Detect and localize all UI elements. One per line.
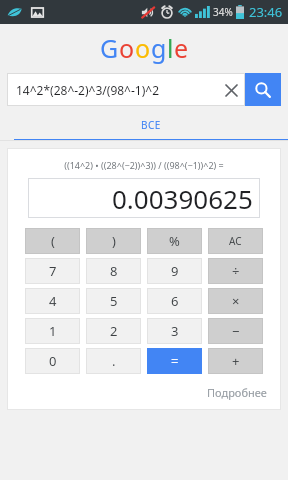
staticText: 3 [171,322,179,340]
staticText: 9 [171,262,179,280]
staticText: 0 [49,352,57,370]
staticText: Подробнее [207,385,267,400]
button[interactable]: ) [86,228,141,254]
staticText: 7 [49,262,57,280]
button[interactable]: 1 [25,318,80,344]
staticText: 2 [110,322,118,340]
button[interactable]: 8 [86,258,141,284]
button[interactable]: AC [208,228,263,254]
button[interactable]: Search [245,73,281,106]
staticText: l [167,31,174,65]
staticText: ( [51,232,55,250]
button[interactable]: + [208,348,263,374]
staticText: g [151,31,167,65]
staticText: ((14^2) • ((28^(−2))^3)) / ((98^(−1))^2)… [7,159,281,171]
button[interactable]: Clear [220,79,242,101]
button[interactable]: 6 [147,288,202,314]
staticText: − [232,322,240,340]
button[interactable]: − [208,318,263,344]
button[interactable]: ВСЕ [14,111,288,140]
button[interactable]: 9 [147,258,202,284]
staticText: G [100,31,119,65]
button[interactable]: 4 [25,288,80,314]
button[interactable]: ÷ [208,258,263,284]
staticText: 4 [49,292,57,310]
button[interactable]: 14^2*(28^-2)^3/(98^-1)^2 [7,73,245,106]
staticText: 8 [110,262,118,280]
staticText: 6 [171,292,179,310]
staticText: 34% [213,5,233,19]
button[interactable]: 3 [147,318,202,344]
staticText: . [112,352,116,370]
button[interactable]: = [147,348,202,374]
staticText: % [169,232,180,250]
staticText: 5 [110,292,118,310]
staticText: 23:46 [249,3,283,21]
button[interactable]: % [147,228,202,254]
staticText: ) [112,232,116,250]
staticText: o [119,31,135,65]
staticText: 14^2*(28^-2)^3/(98^-1)^2 [16,82,220,98]
staticText: e [174,31,189,65]
staticText: AC [229,234,242,248]
button[interactable]: 7 [25,258,80,284]
button[interactable]: 5 [86,288,141,314]
button[interactable]: 2 [86,318,141,344]
button[interactable]: × [208,288,263,314]
staticText: 0.00390625 [112,181,253,216]
staticText: = [171,352,179,370]
button[interactable]: ( [25,228,80,254]
button[interactable]: 0 [25,348,80,374]
staticText: + [232,352,240,370]
staticText: ÷ [232,262,240,280]
button[interactable]: . [86,348,141,374]
staticText: × [232,292,240,310]
staticText: o [135,31,151,65]
button[interactable]: Подробнее [207,382,281,407]
staticText: 1 [49,322,57,340]
staticText: ВСЕ [141,118,161,132]
